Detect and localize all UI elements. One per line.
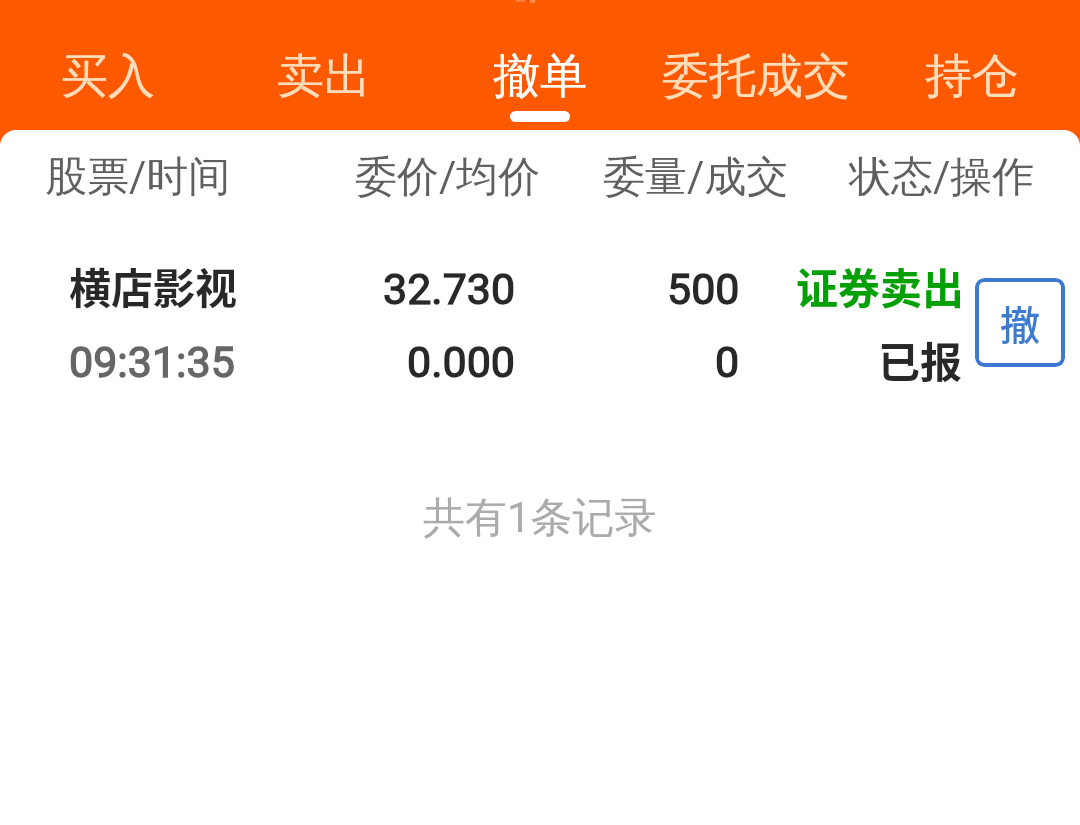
staticText: 横店影视	[69, 255, 238, 316]
staticText: 委量/成交	[603, 151, 789, 204]
staticText: 持仓	[925, 47, 1019, 106]
button[interactable]: 委托成交	[648, 0, 864, 130]
staticText: 证券卖出	[796, 255, 965, 316]
staticText: 状态/操作	[849, 151, 1035, 204]
button[interactable]: 买入	[0, 0, 216, 130]
staticText: 买入	[61, 47, 155, 106]
staticText: 09:31:35	[69, 337, 235, 387]
button[interactable]: 持仓	[864, 0, 1080, 130]
button[interactable]: 撤单	[975, 278, 1065, 367]
staticText: 撤	[1000, 294, 1040, 352]
staticText: 0	[715, 337, 740, 387]
staticText: 委托成交	[662, 47, 850, 106]
staticText: 0.000	[407, 337, 516, 387]
staticText: 委价/均价	[355, 151, 541, 204]
button[interactable]: 卖出	[216, 0, 432, 130]
button[interactable]: 横店影视	[0, 248, 1080, 398]
staticText: 500	[667, 264, 740, 314]
button[interactable]: 撤单	[432, 0, 648, 130]
staticText: 共有1条记录	[423, 492, 657, 545]
staticText: 股票/时间	[45, 151, 231, 204]
staticText: 已报	[878, 329, 963, 390]
staticText: 卖出	[277, 47, 371, 106]
staticText: 32.730	[383, 264, 516, 314]
staticText: 撤单	[493, 47, 587, 106]
